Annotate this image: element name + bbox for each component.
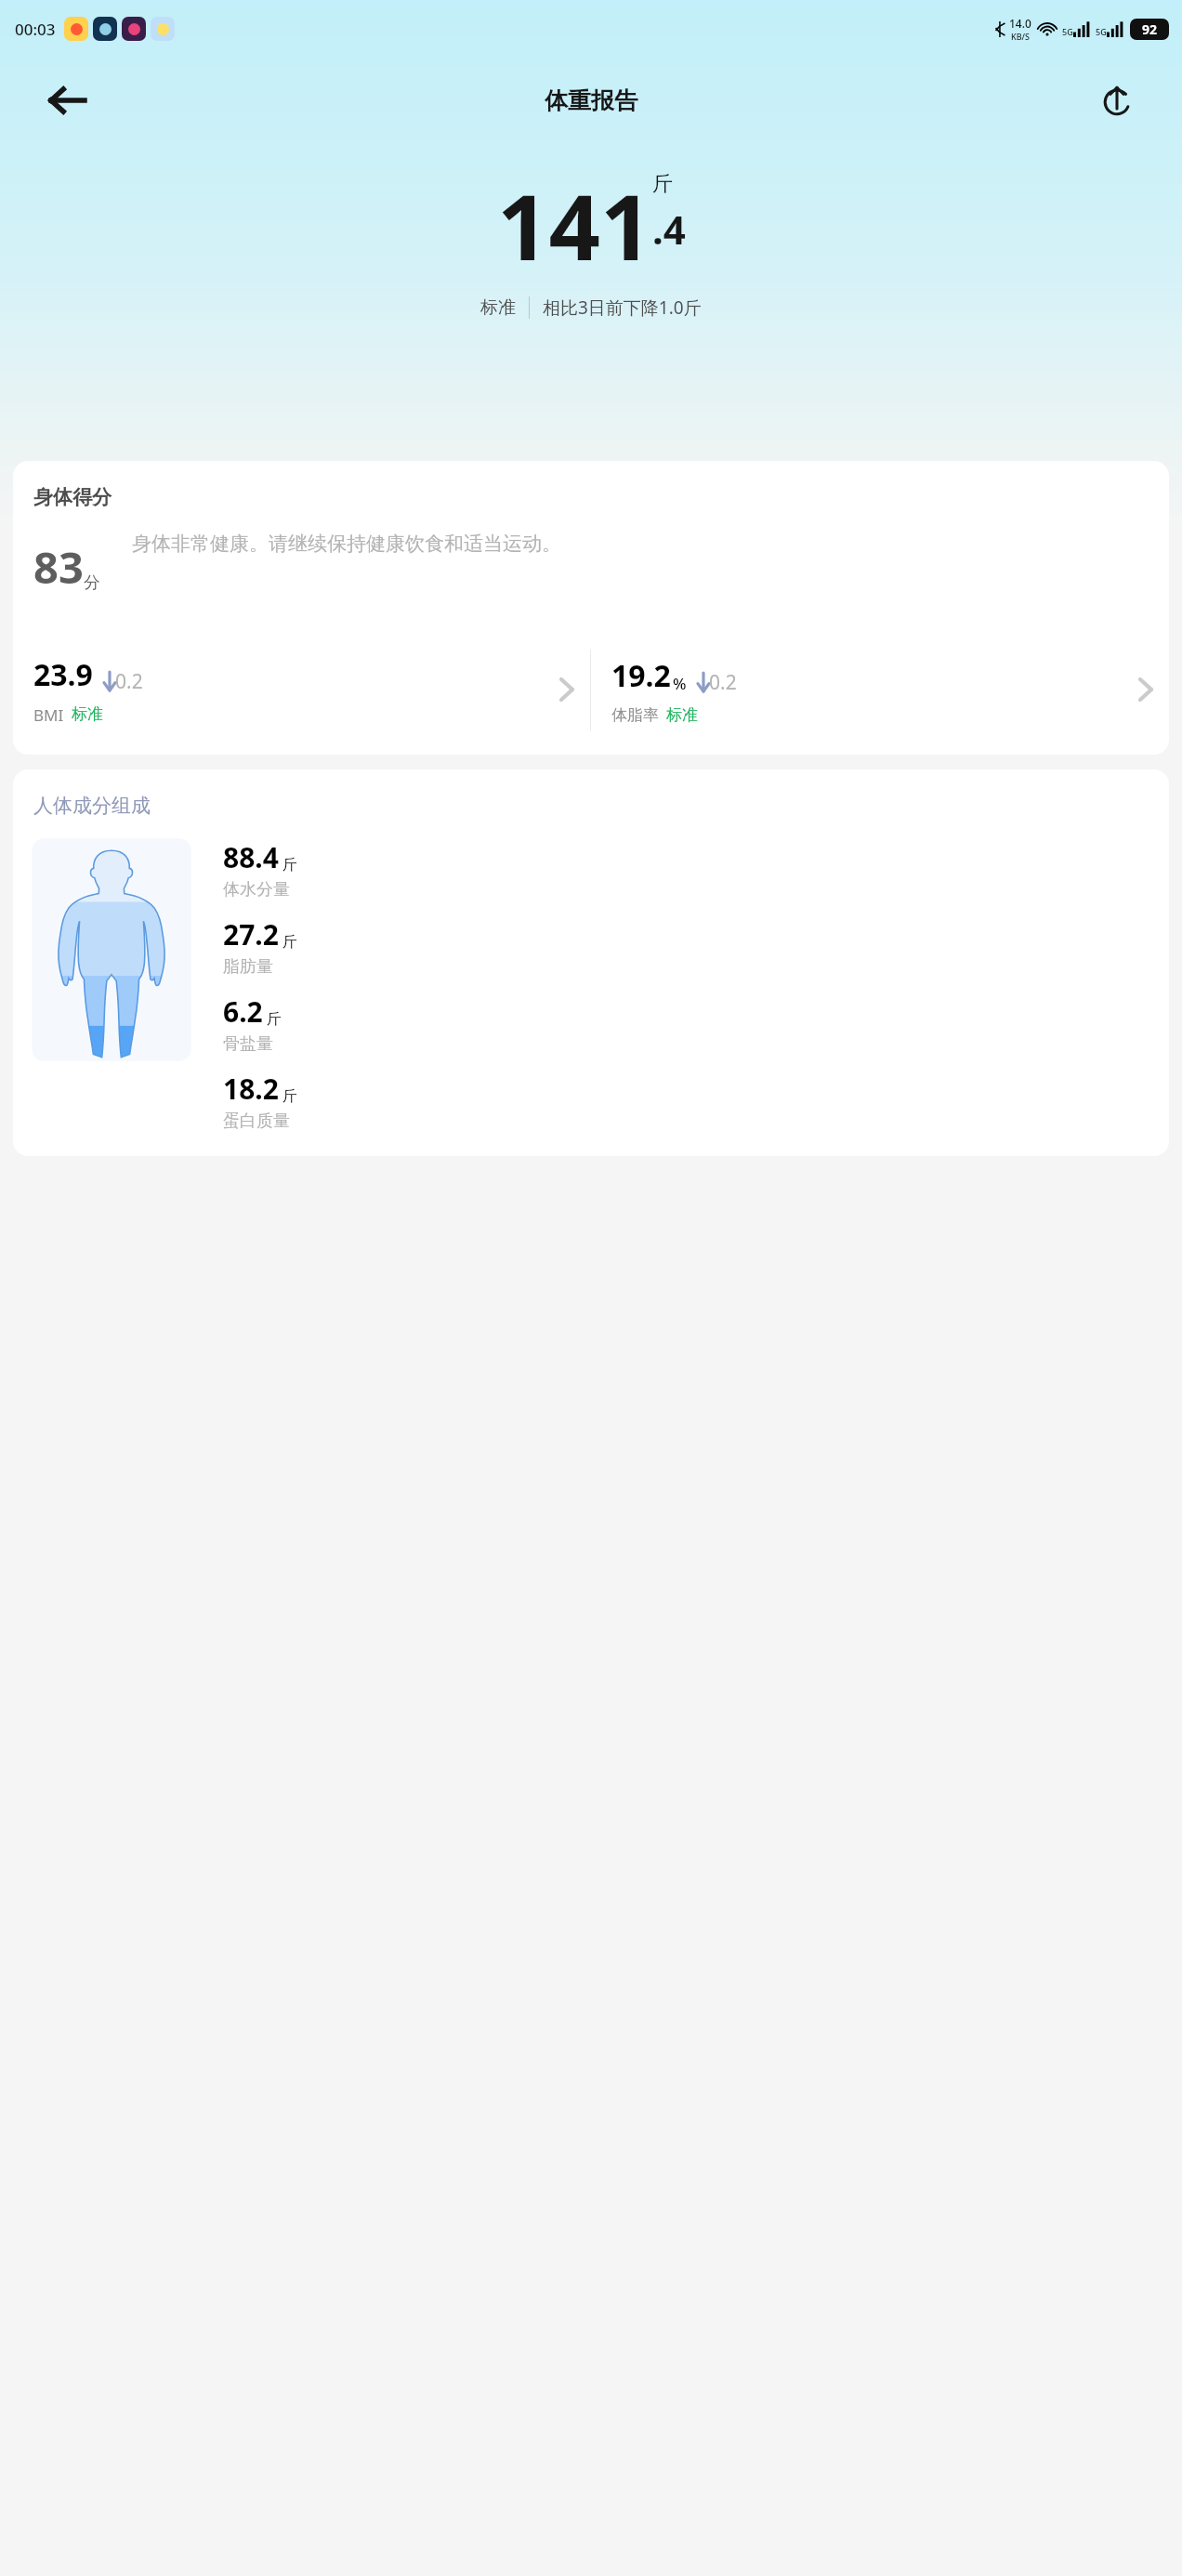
- staticText: BMI: [33, 704, 64, 726]
- staticText: 14.0: [1009, 16, 1031, 31]
- staticText: 斤: [652, 171, 673, 197]
- staticText: KB/S: [1011, 31, 1030, 42]
- staticText: 27.2: [223, 915, 279, 953]
- staticText: 身体得分: [33, 485, 112, 509]
- staticText: 身体非常健康。请继续保持健康饮食和适当运动。: [132, 532, 561, 556]
- button[interactable]: 23.9: [13, 637, 590, 742]
- staticText: 体水分量: [223, 879, 290, 900]
- staticText: 斤: [282, 856, 297, 874]
- staticText: 斤: [267, 1010, 282, 1029]
- staticText: 标准: [72, 704, 103, 724]
- staticText: 标准: [666, 705, 698, 725]
- staticText: 斤: [282, 1087, 297, 1106]
- staticText: 23.9: [33, 654, 93, 695]
- staticText: 人体成分组成: [33, 794, 151, 818]
- staticText: 5G: [1096, 26, 1107, 37]
- staticText: 83: [33, 537, 84, 597]
- staticText: 88.4: [223, 838, 279, 876]
- staticText: 6.2: [223, 992, 263, 1031]
- staticText: 0.2: [709, 669, 737, 696]
- staticText: 0.2: [115, 668, 143, 695]
- staticText: 骨盐量: [223, 1033, 273, 1055]
- staticText: %: [673, 673, 687, 694]
- staticText: 蛋白质量: [223, 1111, 290, 1132]
- staticText: 00:03: [15, 19, 56, 40]
- staticText: 体重报告: [545, 86, 637, 115]
- staticText: 相比3日前下降1.0斤: [543, 296, 702, 320]
- staticText: 92: [1142, 20, 1158, 38]
- button[interactable]: 19.2: [591, 637, 1169, 742]
- staticText: 18.2: [223, 1070, 279, 1108]
- staticText: 19.2: [611, 655, 671, 696]
- staticText: 体脂率: [611, 705, 659, 725]
- staticText: 分: [84, 572, 100, 594]
- staticText: 141: [497, 164, 652, 286]
- staticText: .4: [652, 203, 686, 256]
- button[interactable]: Share: [1091, 74, 1143, 126]
- staticText: 标准: [480, 296, 516, 319]
- staticText: 斤: [282, 933, 297, 952]
- staticText: 脂肪量: [223, 956, 273, 978]
- button[interactable]: Back: [41, 74, 93, 126]
- staticText: 5G: [1062, 26, 1073, 37]
